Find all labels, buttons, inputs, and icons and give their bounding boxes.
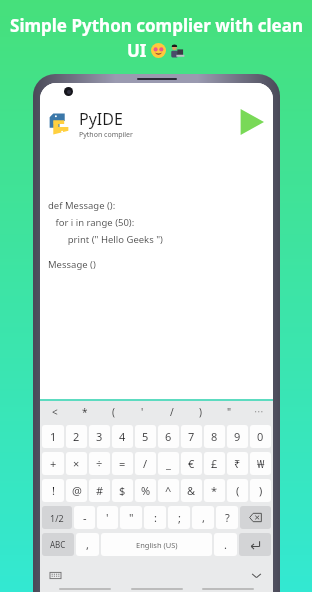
staticText: Python compiler — [79, 130, 133, 140]
staticText: 4 — [119, 429, 126, 444]
staticText: : — [154, 510, 157, 525]
staticText: * — [82, 405, 88, 419]
button[interactable]: Hide keyboard — [247, 566, 265, 584]
button[interactable]: 7 — [181, 425, 202, 448]
staticText: " — [227, 405, 232, 419]
button[interactable]: ^ — [158, 479, 179, 502]
staticText: , — [86, 537, 89, 552]
staticText: English (US) — [136, 540, 178, 550]
staticText: = — [119, 456, 126, 471]
staticText: / — [170, 405, 174, 419]
button[interactable]: 5 — [135, 425, 156, 448]
button[interactable]: 4 — [112, 425, 133, 448]
button[interactable]: 0 — [250, 425, 271, 448]
staticText: 1/2 — [50, 512, 64, 524]
button[interactable]: " — [120, 506, 142, 529]
button[interactable]: ) — [186, 401, 215, 423]
staticText: ÷ — [96, 456, 103, 471]
staticText: ( — [236, 483, 240, 498]
staticText: " — [129, 510, 134, 525]
button[interactable]: < — [40, 401, 70, 423]
button[interactable]: : — [144, 506, 166, 529]
button[interactable]: 6 — [158, 425, 179, 448]
button[interactable]: ; — [168, 506, 190, 529]
button[interactable]: - — [74, 506, 95, 529]
button[interactable]: Enter — [239, 533, 271, 556]
button[interactable]: 8 — [204, 425, 225, 448]
staticText: , — [202, 510, 205, 525]
staticText: ! — [52, 483, 55, 498]
button[interactable]: € — [181, 452, 202, 475]
button[interactable]: £ — [204, 452, 225, 475]
button[interactable]: , — [76, 533, 99, 556]
staticText: PyIDE — [79, 108, 123, 130]
button[interactable]: = — [112, 452, 133, 475]
button[interactable]: 1 — [42, 425, 64, 448]
button[interactable]: ₩ — [250, 452, 271, 475]
staticText: ⋯ — [254, 406, 264, 418]
staticText: < — [52, 405, 58, 419]
button[interactable]: ' — [128, 401, 157, 423]
button[interactable]: * — [70, 401, 99, 423]
button[interactable]: ' — [97, 506, 118, 529]
button[interactable]: , — [192, 506, 214, 529]
button[interactable]: . — [214, 533, 237, 556]
staticText: ? — [225, 510, 230, 525]
button[interactable]: $ — [112, 479, 133, 502]
button[interactable]: & — [181, 479, 202, 502]
button[interactable]: × — [66, 452, 87, 475]
staticText: 0 — [257, 429, 264, 444]
staticText: £ — [211, 456, 218, 471]
staticText: $ — [119, 483, 126, 498]
button[interactable]: ? — [216, 506, 238, 529]
button[interactable]: 3 — [89, 425, 110, 448]
button[interactable]: / — [157, 401, 186, 423]
staticText: ' — [141, 405, 144, 419]
button[interactable]: ₹ — [227, 452, 248, 475]
staticText: + — [50, 456, 57, 471]
staticText: × — [73, 456, 80, 471]
staticText: 8 — [211, 429, 218, 444]
staticText: 2 — [73, 429, 80, 444]
staticText: for i in range (50): — [48, 216, 135, 229]
staticText: 9 — [234, 429, 241, 444]
button[interactable]: ( — [227, 479, 248, 502]
staticText: ' — [106, 510, 109, 525]
button[interactable]: ÷ — [89, 452, 110, 475]
staticText: 3 — [96, 429, 103, 444]
button[interactable]: / — [135, 452, 156, 475]
button[interactable]: Backspace — [240, 506, 271, 529]
staticText: ) — [199, 405, 202, 419]
button[interactable]: + — [42, 452, 64, 475]
staticText: ^ — [165, 483, 172, 498]
staticText: 6 — [165, 429, 172, 444]
staticText: € — [188, 456, 195, 471]
button[interactable]: ! — [42, 479, 64, 502]
button[interactable]: ( — [99, 401, 128, 423]
button[interactable]: 2 — [66, 425, 87, 448]
button[interactable]: * — [204, 479, 225, 502]
button[interactable]: ⋯ — [244, 401, 273, 423]
staticText: * — [211, 483, 218, 498]
staticText: / — [143, 456, 148, 471]
button[interactable]: % — [135, 479, 156, 502]
staticText: ; — [178, 510, 181, 525]
button[interactable]: Run — [236, 107, 266, 137]
staticText: ( — [112, 405, 115, 419]
button[interactable]: " — [215, 401, 244, 423]
staticText: 7 — [188, 429, 195, 444]
staticText: ₹ — [234, 456, 241, 471]
button[interactable]: Keyboard settings — [46, 566, 64, 584]
button[interactable]: @ — [66, 479, 87, 502]
button[interactable]: English (US) — [101, 533, 212, 556]
button[interactable]: ABC — [42, 533, 74, 556]
button[interactable]: 1/2 — [42, 506, 72, 529]
button[interactable]: 9 — [227, 425, 248, 448]
staticText: Message () — [48, 258, 96, 271]
staticText: - — [83, 510, 87, 525]
staticText: 1 — [50, 429, 57, 444]
button[interactable]: # — [89, 479, 110, 502]
button[interactable]: _ — [158, 452, 179, 475]
button[interactable]: ) — [250, 479, 271, 502]
staticText: . — [224, 537, 227, 552]
